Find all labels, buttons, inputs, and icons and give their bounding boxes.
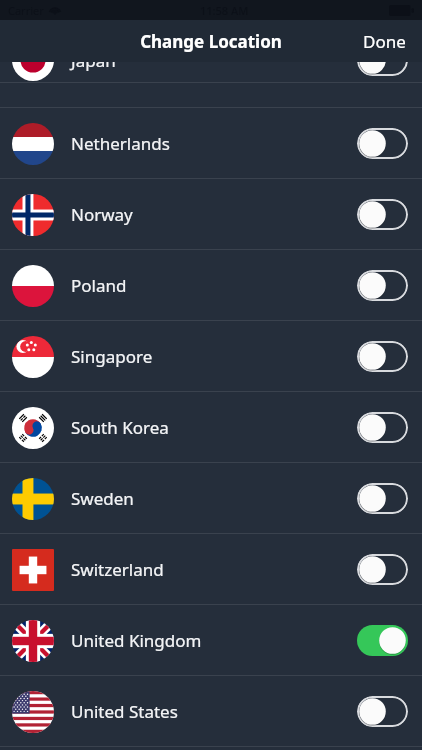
button[interactable]: Done	[347, 20, 422, 62]
staticText: Change Location	[140, 30, 282, 53]
button[interactable]: Off	[357, 412, 408, 443]
staticText: Japan	[71, 62, 116, 72]
button[interactable]: Norway	[0, 179, 422, 250]
button[interactable]: Poland	[0, 250, 422, 321]
button[interactable]: Off	[357, 554, 408, 585]
staticText: Netherlands	[71, 132, 170, 155]
button[interactable]: Off	[357, 62, 408, 76]
button[interactable]: United Kingdom	[0, 605, 422, 676]
button[interactable]: Off	[357, 128, 408, 159]
button[interactable]: Sweden	[0, 463, 422, 534]
button[interactable]: Off	[357, 696, 408, 727]
staticText: Norway	[71, 203, 133, 226]
staticText: Poland	[71, 274, 127, 297]
button[interactable]: Singapore	[0, 321, 422, 392]
button[interactable]: Off	[357, 270, 408, 301]
staticText: Sweden	[71, 487, 134, 510]
button[interactable]: United States	[0, 676, 422, 747]
staticText: United Kingdom	[71, 629, 202, 652]
staticText: Singapore	[71, 345, 153, 368]
staticText: Switzerland	[71, 558, 164, 581]
button[interactable]: Off	[357, 199, 408, 230]
button[interactable]: South Korea	[0, 392, 422, 463]
button[interactable]: Japan	[0, 62, 422, 83]
staticText: Done	[363, 30, 406, 53]
staticText: United States	[71, 700, 178, 723]
button[interactable]: Off	[357, 483, 408, 514]
button[interactable]: On	[357, 625, 408, 656]
button[interactable]: Off	[357, 341, 408, 372]
button[interactable]: Netherlands	[0, 108, 422, 179]
staticText: South Korea	[71, 416, 169, 439]
button[interactable]: Switzerland	[0, 534, 422, 605]
